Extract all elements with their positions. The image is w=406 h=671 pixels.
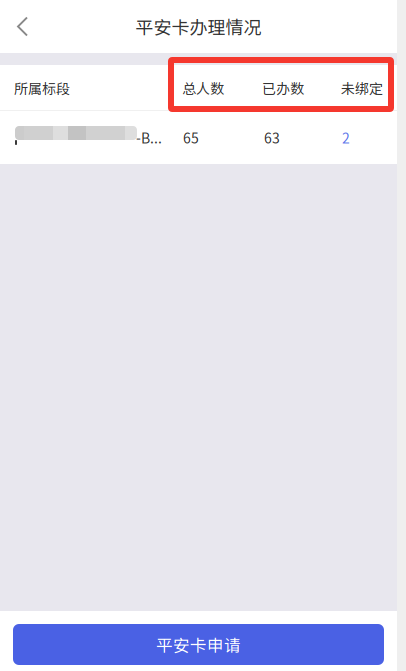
staticText: 2 <box>342 127 350 148</box>
staticText: 总人数 <box>182 78 224 98</box>
button[interactable]: 平安卡申请 <box>13 624 384 665</box>
staticText: 已办数 <box>262 78 304 98</box>
staticText: 所属标段 <box>14 78 70 98</box>
staticText: 平安卡办理情况 <box>135 13 261 40</box>
staticText: 65 <box>183 127 199 148</box>
button[interactable]: Back <box>0 0 46 53</box>
staticText: 63 <box>264 127 280 148</box>
staticText: 平安卡申请 <box>156 632 241 656</box>
staticText: -B... <box>136 127 162 148</box>
staticText: 未绑定 <box>341 78 383 98</box>
